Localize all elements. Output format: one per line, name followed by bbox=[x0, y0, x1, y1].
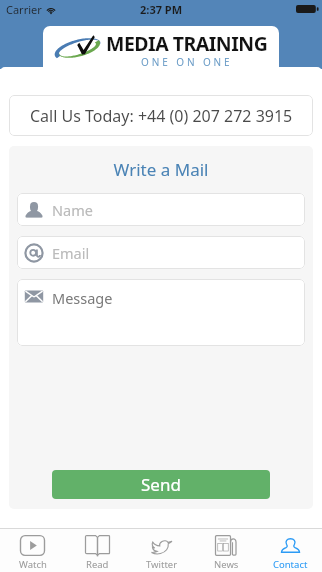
button[interactable]: Contact bbox=[258, 529, 322, 572]
staticText: Message bbox=[52, 288, 113, 308]
staticText: Carrier bbox=[6, 2, 42, 17]
staticText: ONE ON ONE bbox=[141, 55, 233, 69]
button[interactable]: News bbox=[194, 529, 258, 572]
button[interactable]: Message bbox=[17, 279, 305, 346]
button[interactable]: Watch bbox=[0, 529, 65, 572]
button[interactable]: Email bbox=[17, 236, 305, 269]
button[interactable]: Name bbox=[17, 193, 305, 226]
staticText: News bbox=[214, 558, 239, 571]
staticText: Contact bbox=[273, 558, 308, 571]
staticText: Write a Mail bbox=[9, 158, 313, 181]
staticText: Watch bbox=[19, 558, 47, 571]
staticText: Twitter bbox=[146, 558, 178, 571]
button[interactable]: Twitter bbox=[130, 529, 194, 572]
staticText: 2:37 PM bbox=[140, 2, 183, 17]
button[interactable]: Send bbox=[52, 470, 270, 499]
staticText: Call Us Today: +44 (0) 207 272 3915 bbox=[30, 105, 293, 127]
button[interactable]: Call Us Today: +44 (0) 207 272 3915 bbox=[9, 95, 313, 136]
staticText: MEDIA TRAINING bbox=[106, 30, 268, 57]
staticText: Read bbox=[86, 558, 109, 571]
button[interactable]: Read bbox=[65, 529, 130, 572]
staticText: Send bbox=[141, 473, 181, 496]
staticText: Name bbox=[52, 200, 93, 220]
staticText: Email bbox=[52, 243, 90, 263]
